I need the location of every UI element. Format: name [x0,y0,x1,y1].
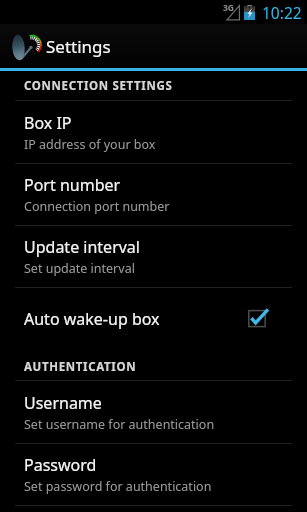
staticText: Set password for authentication [24,478,212,495]
other: Auto wake-up box checkbox [248,309,268,329]
button[interactable]: Password [0,444,307,506]
staticText: Port number [24,174,121,196]
staticText: CONNECTION SETTINGS [24,78,173,94]
staticText: IP address of your box [24,136,156,153]
staticText: Settings [46,35,111,58]
button[interactable]: Update interval [0,226,307,288]
button[interactable]: Username [0,381,307,444]
button[interactable]: Port number [0,164,307,226]
staticText: Connection port number [24,198,170,215]
button[interactable]: Box IP [0,101,307,164]
button[interactable]: Auto wake-up box [0,288,307,350]
staticText: Set update interval [24,260,135,277]
staticText: Set username for authentication [24,416,215,433]
staticText: Update interval [24,236,140,258]
staticText: 3G [223,2,235,14]
staticText: AUTHENTICATION [24,359,137,375]
staticText: Auto wake-up box [24,308,248,330]
staticText: Password [24,454,97,476]
staticText: Box IP [24,112,72,134]
staticText: 10:22 [262,2,302,23]
staticText: Username [24,392,102,414]
